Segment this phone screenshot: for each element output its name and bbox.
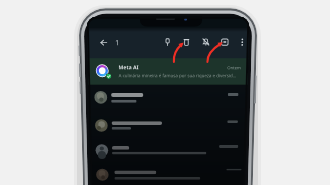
button[interactable] xyxy=(202,38,210,46)
button[interactable] xyxy=(240,38,245,46)
staticText: Ontem xyxy=(227,65,241,71)
button[interactable] xyxy=(90,165,246,185)
button[interactable] xyxy=(221,38,229,46)
button[interactable] xyxy=(88,58,248,85)
button[interactable] xyxy=(183,38,190,46)
button[interactable] xyxy=(89,138,246,165)
button[interactable] xyxy=(87,28,249,59)
button[interactable] xyxy=(164,38,171,46)
button[interactable] xyxy=(100,39,107,46)
staticText: A culinária mineira é famosa por sua riq… xyxy=(119,72,237,78)
staticText: 1 xyxy=(115,38,120,48)
button[interactable] xyxy=(88,84,248,111)
button[interactable] xyxy=(89,111,247,138)
staticText: Meta AI xyxy=(118,63,139,70)
